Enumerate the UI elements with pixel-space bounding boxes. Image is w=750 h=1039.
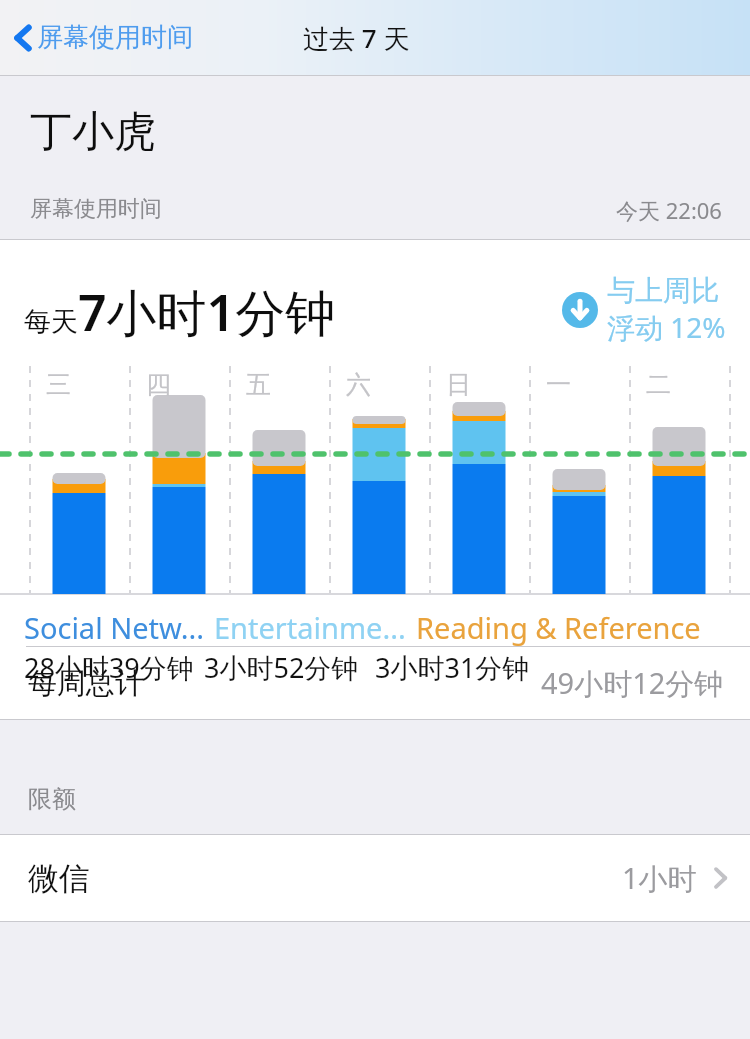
staticText: 五 [246,369,271,400]
staticText: 每天 [24,305,78,339]
staticText: 49小时12分钟 [541,663,724,703]
staticText: 三 [46,369,71,400]
staticText: 六 [346,369,371,400]
staticText: 二 [646,369,671,400]
staticText: 一 [546,369,571,400]
staticText: Reading & Reference [416,608,701,647]
staticText: Social Netw... [24,608,204,647]
other: Back [14,23,32,53]
staticText: 今天 22:06 [616,195,722,225]
staticText: 四 [146,369,171,400]
button[interactable]: Back [0,13,203,62]
staticText: 7小时1分钟 [78,278,336,346]
staticText: 3小时31分钟 [375,649,530,686]
staticText: 与上周比 [607,273,719,308]
staticText: 每周总计 [28,665,144,702]
staticText: 微信 [28,859,90,898]
staticText: 丁小虎 [30,106,156,159]
other: Open [713,865,728,891]
button[interactable]: 微信 [0,835,750,921]
staticText: Entertainme... [214,608,406,647]
staticText: 1小时 [622,858,697,898]
staticText: 屏幕使用时间 [37,21,193,54]
staticText: 屏幕使用时间 [30,195,162,223]
button[interactable]: 每周总计 [0,647,750,719]
staticText: 日 [446,369,471,400]
staticText: 28小时39分钟 [24,649,194,686]
staticText: 浮动 12% [607,308,726,346]
staticText: 3小时52分钟 [204,649,359,686]
staticText: 过去 7 天 [303,20,410,56]
staticText: 限额 [28,784,76,814]
